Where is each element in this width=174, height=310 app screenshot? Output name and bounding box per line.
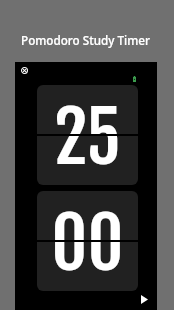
staticText: 00 xyxy=(51,200,124,287)
staticText: 25 xyxy=(54,94,121,181)
button[interactable]: 00 xyxy=(37,191,138,291)
button[interactable]: 25 xyxy=(37,85,138,185)
button[interactable]: Start timer xyxy=(133,288,155,310)
other: Battery xyxy=(133,76,136,82)
button[interactable]: Stop timer xyxy=(17,63,32,78)
staticText: Pomodoro Study Timer xyxy=(21,32,150,48)
